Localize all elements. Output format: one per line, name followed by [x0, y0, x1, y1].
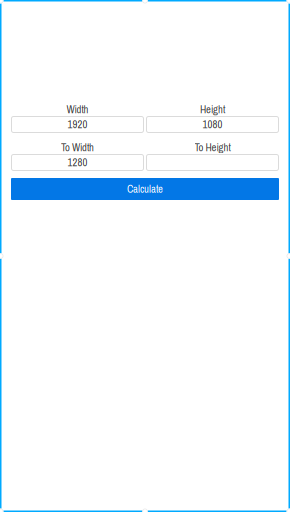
- staticText: 1080: [202, 117, 222, 132]
- staticText: 1280: [67, 155, 87, 170]
- button[interactable]: 1080: [146, 116, 279, 133]
- staticText: Width: [66, 102, 88, 117]
- staticText: To Width: [61, 140, 94, 155]
- button[interactable]: 1920: [11, 116, 144, 133]
- staticText: To Height: [194, 140, 230, 155]
- staticText: Height: [200, 102, 225, 117]
- staticText: Calculate: [127, 182, 163, 196]
- staticText: 1920: [67, 117, 87, 132]
- button[interactable]: 1280: [11, 154, 144, 171]
- button[interactable]: Calculate: [11, 178, 279, 200]
- button[interactable]: [146, 154, 279, 171]
